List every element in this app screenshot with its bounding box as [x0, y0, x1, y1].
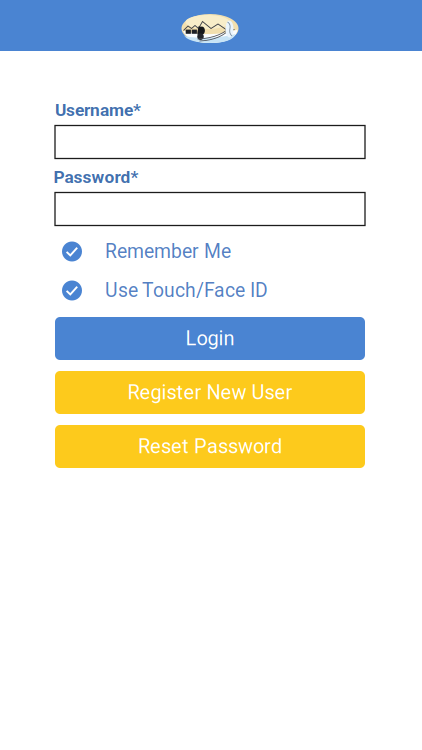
staticText: Remember Me — [105, 240, 231, 263]
button[interactable]: Remember Me — [62, 241, 372, 261]
staticText: Reset Password — [138, 435, 282, 458]
staticText: Username* — [55, 100, 141, 120]
staticText: Register New User — [127, 381, 292, 404]
button[interactable]: Use Touch/Face ID — [62, 280, 372, 300]
staticText: Login — [185, 327, 234, 350]
staticText: Password* — [53, 167, 138, 187]
button[interactable]: Reset Password — [55, 425, 365, 468]
button[interactable]: Register New User — [55, 371, 365, 414]
button[interactable]: Login — [55, 317, 365, 360]
staticText: Use Touch/Face ID — [105, 279, 268, 302]
